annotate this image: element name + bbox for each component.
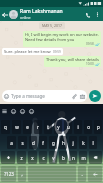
- staticText: v: [52, 155, 55, 161]
- button[interactable]: h: [59, 136, 67, 149]
- staticText: s: [21, 140, 24, 146]
- staticText: i: [77, 124, 79, 130]
- staticText: k: [82, 140, 85, 146]
- button[interactable]: Hi, I will begin my work on our website.…: [23, 31, 101, 47]
- button[interactable]: o: [84, 120, 92, 134]
- button[interactable]: p: [94, 120, 102, 134]
- button[interactable]: z: [17, 151, 26, 164]
- button[interactable]: Type a message: [2, 90, 87, 102]
- staticText: .: [81, 171, 83, 177]
- staticText: Sure. please let me know: [4, 49, 51, 54]
- staticText: h: [62, 140, 65, 146]
- button[interactable]: v: [49, 151, 57, 164]
- staticText: 10:00: [86, 62, 94, 66]
- staticText: y: [57, 124, 60, 130]
- staticText: x: [31, 155, 34, 161]
- button[interactable]: c: [39, 151, 47, 164]
- staticText: a: [10, 140, 13, 146]
- staticText: o: [87, 124, 90, 130]
- button[interactable]: w: [12, 120, 21, 134]
- staticText: d: [32, 140, 35, 146]
- button[interactable]: Send: [89, 90, 101, 102]
- button[interactable]: Backspace: [89, 151, 102, 164]
- button[interactable]: j: [69, 136, 77, 149]
- button[interactable]: f: [39, 136, 47, 149]
- button[interactable]: Keyboard tool: [19, 108, 26, 115]
- button[interactable]: x: [28, 151, 37, 164]
- staticText: f: [42, 140, 44, 146]
- staticText: t: [47, 124, 49, 130]
- staticText: b: [62, 155, 65, 161]
- button[interactable]: a: [7, 136, 16, 149]
- staticText: Thank you, will share details: [46, 57, 99, 62]
- staticText: MAY 5, 2017: [42, 23, 62, 28]
- staticText: p: [97, 124, 100, 130]
- staticText: j: [72, 140, 74, 146]
- button[interactable]: g: [49, 136, 57, 149]
- staticText: c: [42, 155, 45, 161]
- staticText: ?123: [4, 171, 14, 177]
- staticText: Ram Lakshmanan: [20, 8, 63, 15]
- button[interactable]: Enter: [88, 166, 102, 182]
- button[interactable]: Menu: [1, 108, 8, 115]
- button[interactable]: r: [34, 120, 42, 134]
- button[interactable]: Back: [0, 10, 9, 19]
- button[interactable]: Video call: [82, 9, 93, 20]
- button[interactable]: n: [69, 151, 77, 164]
- button[interactable]: s: [18, 136, 27, 149]
- button[interactable]: Shift: [1, 151, 15, 164]
- button[interactable]: Sure. please let me know: [2, 48, 63, 55]
- staticText: l: [92, 140, 94, 146]
- staticText: m: [81, 155, 86, 161]
- button[interactable]: Keyboard tool: [10, 108, 17, 115]
- button[interactable]: q: [1, 120, 10, 134]
- button[interactable]: i: [74, 120, 82, 134]
- button[interactable]: d: [29, 136, 37, 149]
- staticText: e: [26, 124, 29, 130]
- staticText: online: [20, 15, 31, 20]
- button[interactable]: ,: [18, 166, 26, 182]
- button[interactable]: k: [79, 136, 87, 149]
- button[interactable]: t: [44, 120, 52, 134]
- staticText: 09:58: [86, 42, 94, 46]
- staticText: Type a message: [11, 93, 45, 99]
- button[interactable]: .: [78, 166, 86, 182]
- button[interactable]: l: [89, 136, 97, 149]
- staticText: n: [72, 155, 75, 161]
- staticText: q: [4, 124, 7, 130]
- button[interactable]: e: [23, 120, 32, 134]
- staticText: g: [52, 140, 55, 146]
- button[interactable]: ?123: [1, 166, 16, 182]
- staticText: ,: [21, 171, 23, 177]
- staticText: z: [20, 155, 23, 161]
- button[interactable]: y: [54, 120, 62, 134]
- button[interactable]: m: [79, 151, 87, 164]
- button[interactable]: Thank you, will share details: [44, 56, 101, 67]
- button[interactable]: More options: [93, 10, 102, 19]
- button[interactable]: [28, 166, 76, 182]
- button[interactable]: b: [59, 151, 67, 164]
- staticText: w: [15, 124, 19, 130]
- button[interactable]: Keyboard tool: [28, 108, 35, 115]
- staticText: u: [67, 124, 70, 130]
- button[interactable]: u: [64, 120, 72, 134]
- staticText: Hi, I will begin my work on our website.…: [25, 32, 99, 42]
- staticText: r: [37, 124, 39, 130]
- staticText: 09:59: [53, 50, 61, 54]
